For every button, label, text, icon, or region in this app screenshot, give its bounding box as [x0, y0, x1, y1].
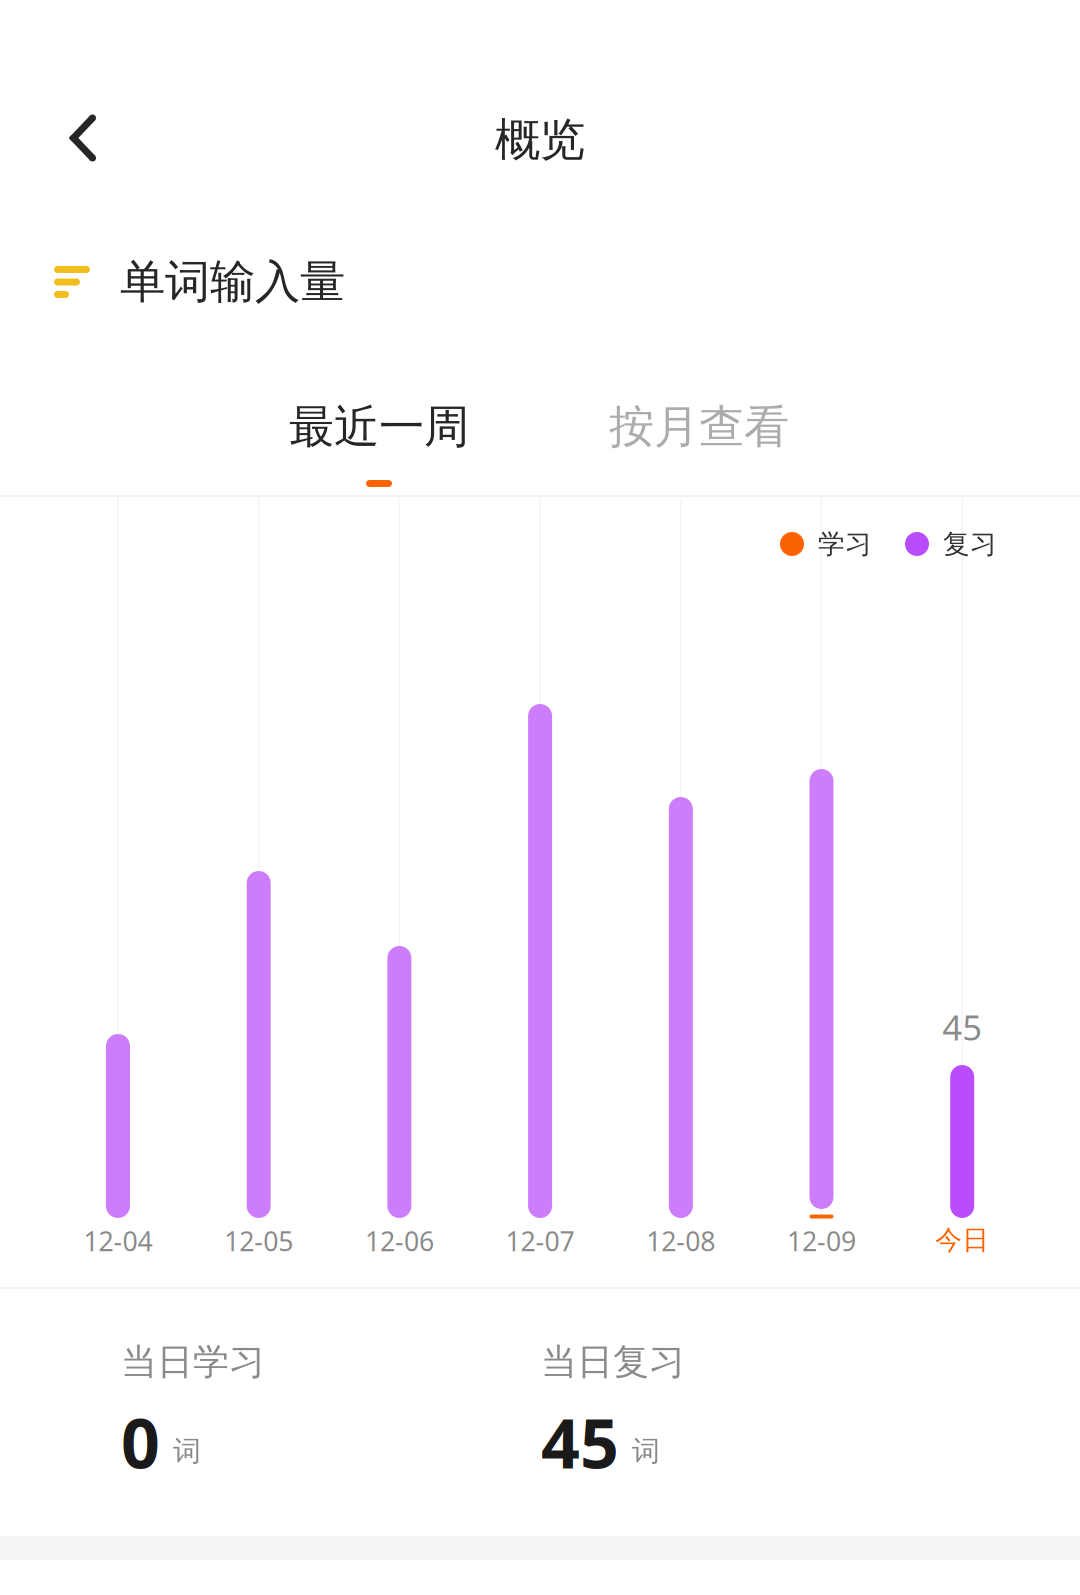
staticText: 12-06 [365, 1223, 434, 1259]
staticText: 12-07 [506, 1223, 575, 1259]
staticText: 45 [541, 1397, 619, 1487]
staticText: 按月查看 [609, 399, 789, 455]
staticText: 学习 [818, 528, 872, 560]
staticText: 今日 [935, 1224, 989, 1256]
button[interactable]: 按月查看 [569, 401, 829, 501]
staticText: 12-04 [83, 1223, 152, 1259]
staticText: 12-08 [646, 1223, 715, 1259]
staticText: 45 [942, 1004, 982, 1050]
staticText: 概览 [495, 112, 585, 168]
staticText: 词 [632, 1434, 660, 1468]
staticText: 最近一周 [289, 399, 469, 455]
staticText: 词 [173, 1434, 201, 1468]
staticText: 单词输入量 [120, 254, 345, 310]
staticText: 当日学习 [121, 1340, 265, 1384]
button[interactable]: 最近一周 [249, 401, 509, 501]
staticText: 12-05 [224, 1223, 293, 1259]
staticText: 12-09 [787, 1223, 856, 1259]
staticText: 0 [121, 1397, 160, 1487]
staticText: 复习 [943, 528, 997, 560]
staticText: 当日复习 [541, 1340, 685, 1384]
button[interactable]: Back [35, 90, 131, 186]
